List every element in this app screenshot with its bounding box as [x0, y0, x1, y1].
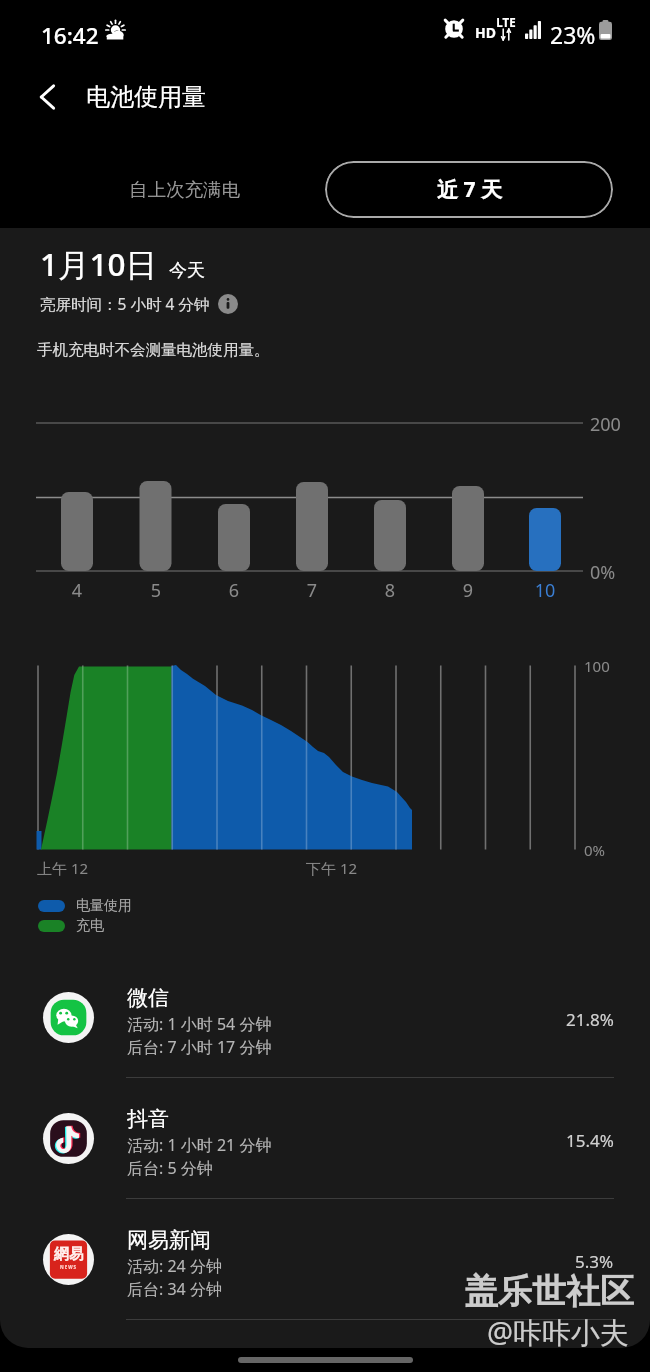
button[interactable]: 充电: [38, 916, 104, 936]
staticText: 盖乐世社区: [464, 1270, 634, 1313]
staticText: 21.8%: [566, 1008, 614, 1031]
staticText: 微信: [127, 985, 169, 1011]
staticText: LTE: [496, 15, 516, 31]
staticText: 200: [590, 412, 621, 437]
staticText: NEWS: [60, 1264, 78, 1270]
button[interactable]: 电量使用: [38, 896, 132, 916]
staticText: 7: [282, 578, 342, 603]
staticText: 今天: [169, 259, 205, 282]
staticText: @咔咔小夫: [487, 1312, 630, 1348]
staticText: 网易新闻: [127, 1227, 211, 1253]
staticText: 后台: 7 小时 17 分钟: [127, 1036, 272, 1058]
staticText: 0%: [590, 560, 616, 585]
staticText: 0%: [584, 840, 606, 860]
staticText: 亮屏时间：5 小时 4 分钟: [40, 293, 210, 314]
staticText: 充电: [76, 917, 104, 935]
staticText: 活动: 1 小时 21 分钟: [127, 1134, 272, 1156]
staticText: 23%: [550, 19, 596, 50]
staticText: 电量使用: [76, 897, 132, 915]
staticText: 抖音: [127, 1106, 169, 1132]
staticText: 上午 12: [37, 858, 89, 878]
staticText: 后台: 34 分钟: [127, 1278, 222, 1300]
staticText: 9: [438, 578, 498, 603]
button[interactable]: 近 7 天: [325, 161, 613, 218]
staticText: 近 7 天: [437, 175, 502, 204]
staticText: 100: [584, 656, 610, 676]
staticText: 5: [126, 578, 186, 603]
staticText: 1月10日: [40, 242, 158, 285]
staticText: 15.4%: [566, 1129, 614, 1152]
staticText: 16:42: [41, 20, 99, 51]
staticText: 下午 12: [306, 858, 358, 878]
staticText: 后台: 5 分钟: [127, 1157, 213, 1179]
staticText: 網易: [54, 1245, 84, 1264]
staticText: 10: [515, 578, 575, 603]
staticText: 5.3%: [575, 1250, 614, 1273]
button[interactable]: 微信: [0, 957, 650, 1078]
button[interactable]: 抖音: [0, 1078, 650, 1199]
button[interactable]: 自上次充满电: [105, 161, 264, 218]
staticText: 电池使用量: [86, 82, 206, 112]
staticText: 自上次充满电: [129, 178, 240, 201]
staticText: 8: [360, 578, 420, 603]
staticText: HD: [475, 23, 496, 42]
staticText: 4: [47, 578, 107, 603]
staticText: 活动: 1 小时 54 分钟: [127, 1013, 272, 1035]
staticText: 活动: 24 分钟: [127, 1255, 222, 1277]
staticText: 手机充电时不会测量电池使用量。: [37, 340, 270, 360]
button[interactable]: 網易: [0, 1199, 650, 1320]
button[interactable]: Back: [20, 69, 76, 125]
staticText: 6: [204, 578, 264, 603]
